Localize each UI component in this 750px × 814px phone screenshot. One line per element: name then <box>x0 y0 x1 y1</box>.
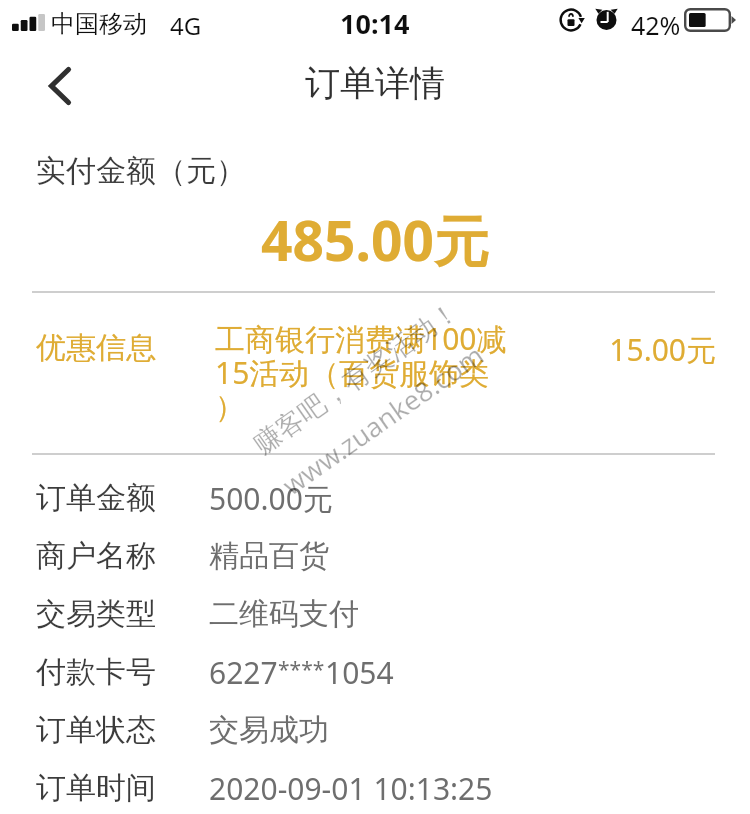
staticText: 优惠信息 <box>36 329 156 367</box>
staticText: 订单金额 <box>36 479 156 517</box>
staticText: 订单状态 <box>36 711 156 749</box>
staticText: 商户名称 <box>36 537 156 575</box>
staticText: 6227 <box>209 652 278 693</box>
staticText: 1054 <box>325 652 394 693</box>
staticText: 15.00元 <box>600 329 716 370</box>
staticText: 工商银行消费满100减 15活动（百货服饰类 ） <box>215 318 525 426</box>
staticText: 交易类型 <box>36 595 156 633</box>
staticText: www.zuanke8.com <box>274 336 491 503</box>
staticText: 精品百货 <box>209 537 329 575</box>
staticText: 42% <box>631 8 681 42</box>
staticText: 付款卡号 <box>36 653 156 691</box>
staticText: 订单详情 <box>0 61 750 105</box>
staticText: 赚客吧，有奖活动！ <box>247 294 466 461</box>
staticText: 4G <box>170 9 202 42</box>
staticText: 中国移动 <box>51 9 147 39</box>
staticText: 500.00元 <box>209 478 333 519</box>
button[interactable]: Back <box>26 52 94 120</box>
staticText: 二维码支付 <box>209 595 359 633</box>
staticText: 2020-09-01 10:13:25 <box>209 768 493 809</box>
staticText: 实付金额（元） <box>36 152 246 190</box>
staticText: 10:14 <box>340 5 410 42</box>
staticText: 485.00元 <box>0 202 750 277</box>
staticText: **** <box>278 655 325 684</box>
staticText: 交易成功 <box>209 711 329 749</box>
staticText: 订单时间 <box>36 769 156 807</box>
